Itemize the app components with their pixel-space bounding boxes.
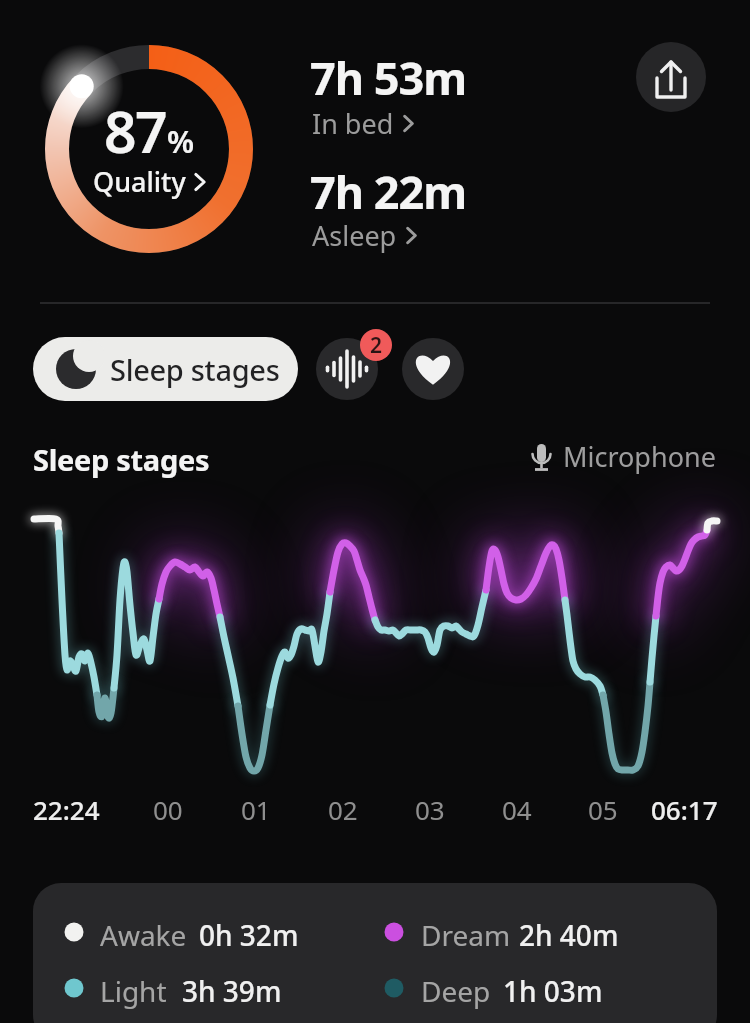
button[interactable]: Dream: [421, 916, 511, 954]
staticText: 04: [502, 792, 532, 827]
button[interactable]: 7h 22m: [310, 161, 467, 222]
staticText: 01: [241, 792, 271, 827]
staticText: 05: [588, 792, 618, 827]
button[interactable]: Sleep stages: [33, 337, 298, 401]
button[interactable]: [402, 338, 464, 400]
staticText: 03: [415, 792, 445, 827]
staticText: Microphone: [563, 438, 716, 475]
staticText: Quality: [93, 163, 186, 200]
staticText: 22:24: [33, 792, 100, 827]
button[interactable]: Microphone: [529, 438, 716, 475]
button[interactable]: Asleep: [312, 217, 417, 254]
button[interactable]: 7h 53m: [310, 47, 467, 108]
staticText: Sleep stages: [33, 440, 210, 479]
button[interactable]: Deep: [421, 972, 491, 1010]
staticText: 87: [104, 92, 167, 170]
button[interactable]: 87: [36, 36, 262, 262]
button[interactable]: Awake: [100, 916, 187, 954]
button[interactable]: 3h 39m: [182, 972, 282, 1010]
button[interactable]: [636, 42, 706, 112]
staticText: Sleep stages: [110, 350, 280, 389]
button[interactable]: 0h 32m: [199, 916, 299, 954]
staticText: %: [167, 120, 195, 162]
staticText: 00: [153, 792, 183, 827]
button[interactable]: 1h 03m: [503, 972, 603, 1010]
button[interactable]: 2h 40m: [519, 916, 619, 954]
button[interactable]: [316, 338, 378, 400]
staticText: 2: [370, 331, 383, 360]
staticText: 02: [328, 792, 358, 827]
staticText: 06:17: [651, 792, 718, 827]
button[interactable]: In bed: [312, 105, 414, 142]
button[interactable]: Light: [100, 972, 167, 1010]
staticText: In bed: [312, 105, 394, 142]
staticText: Asleep: [312, 217, 397, 254]
